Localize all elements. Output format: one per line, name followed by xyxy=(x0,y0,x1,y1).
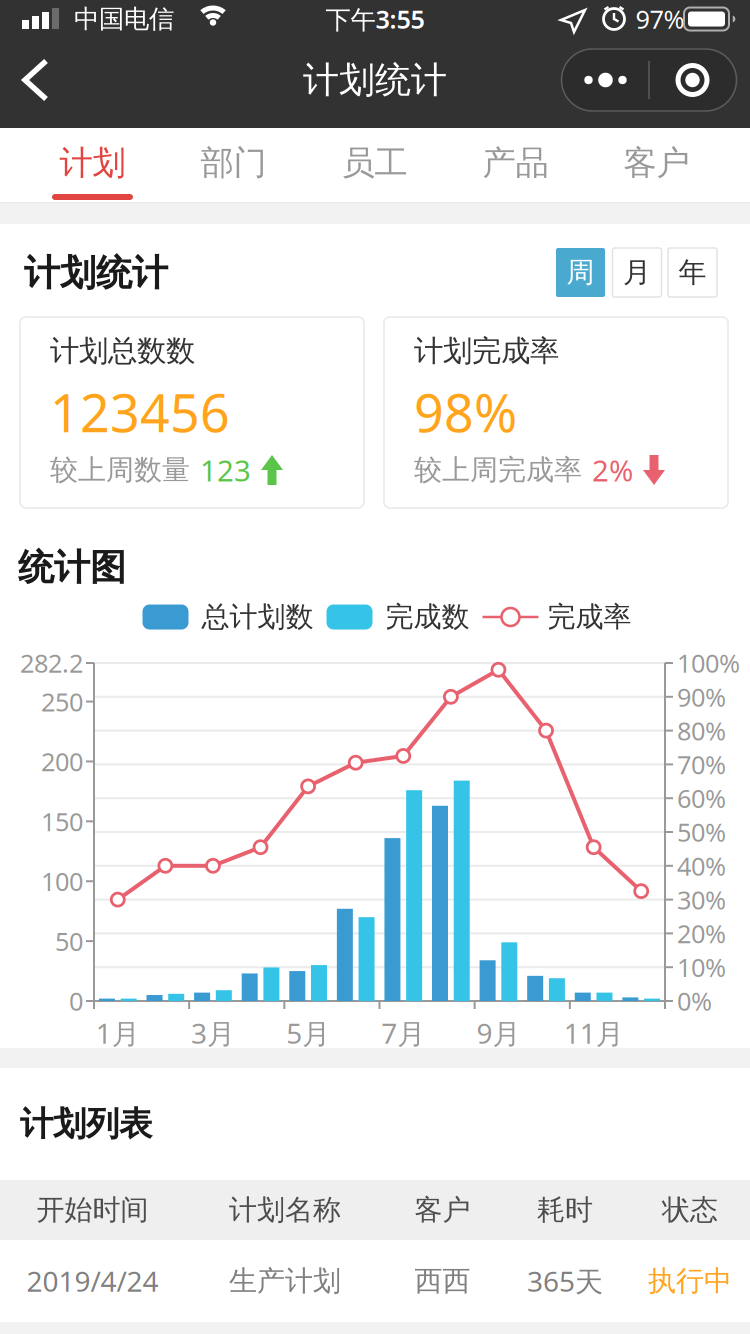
staticText: 月 xyxy=(623,255,651,290)
staticText: 计划完成率 xyxy=(414,333,559,369)
button[interactable]: 周 xyxy=(556,248,605,297)
button[interactable]: 客户 xyxy=(586,128,727,202)
staticText: 周 xyxy=(566,255,594,290)
staticText: 40% xyxy=(677,849,726,883)
staticText: 产品 xyxy=(482,142,548,183)
button[interactable]: 月 xyxy=(612,248,661,297)
staticText: 60% xyxy=(677,781,726,815)
button[interactable]: 计划 xyxy=(22,128,163,202)
staticText: 客户 xyxy=(414,1193,470,1227)
staticText: 统计图 xyxy=(18,545,126,590)
staticText: 计划统计 xyxy=(24,251,168,295)
staticText: 7月 xyxy=(381,1014,425,1052)
staticText: 97% xyxy=(635,2,684,36)
staticText: 250 xyxy=(41,685,83,718)
staticText: 中国电信 xyxy=(74,3,174,34)
staticText: 0 xyxy=(69,984,83,1018)
staticText: 5月 xyxy=(286,1014,330,1052)
staticText: 完成率 xyxy=(547,600,631,634)
staticText: 完成数 xyxy=(385,600,469,634)
staticText: 员工 xyxy=(341,142,407,183)
staticText: 80% xyxy=(677,714,726,747)
staticText: 下午3:55 xyxy=(325,2,424,36)
button[interactable]: 员工 xyxy=(304,128,445,202)
staticText: 较上周数量 xyxy=(50,453,190,487)
staticText: 耗时 xyxy=(537,1193,593,1227)
staticText: 100% xyxy=(677,646,740,680)
staticText: 执行中 xyxy=(648,1264,732,1298)
staticText: 9月 xyxy=(476,1014,520,1052)
button[interactable]: 部门 xyxy=(163,128,304,202)
staticText: 2% xyxy=(592,450,633,489)
staticText: 50% xyxy=(677,815,726,849)
staticText: 年 xyxy=(678,255,706,290)
staticText: 总计划数 xyxy=(201,600,313,634)
staticText: 计划总数数 xyxy=(50,333,195,369)
staticText: 90% xyxy=(677,680,726,714)
staticText: 70% xyxy=(677,748,726,781)
button[interactable]: Back xyxy=(18,58,62,102)
button[interactable]: 产品 xyxy=(445,128,586,202)
staticText: 生产计划 xyxy=(229,1264,341,1298)
staticText: 计划统计 xyxy=(303,58,447,102)
staticText: 50 xyxy=(55,924,83,958)
button[interactable]: Exit mini program xyxy=(670,64,714,96)
staticText: 计划 xyxy=(59,142,125,183)
staticText: 部门 xyxy=(200,142,266,183)
staticText: 开始时间 xyxy=(36,1193,148,1227)
staticText: 10% xyxy=(677,950,726,984)
staticText: 西西 xyxy=(414,1264,470,1298)
staticText: 123 xyxy=(200,450,251,489)
staticText: 100 xyxy=(41,864,83,898)
staticText: 客户 xyxy=(623,142,689,183)
staticText: 98% xyxy=(414,377,517,447)
staticText: 较上周完成率 xyxy=(414,453,582,487)
staticText: 30% xyxy=(677,883,726,916)
staticText: 20% xyxy=(677,917,726,950)
staticText: 0% xyxy=(677,984,712,1018)
staticText: 282.2 xyxy=(20,646,83,680)
staticText: 365天 xyxy=(527,1262,603,1300)
staticText: 1月 xyxy=(96,1014,140,1052)
staticText: 计划列表 xyxy=(20,1103,152,1144)
button[interactable]: 年 xyxy=(668,248,717,297)
staticText: 123456 xyxy=(50,377,230,447)
staticText: 3月 xyxy=(191,1014,235,1052)
staticText: 150 xyxy=(41,804,83,838)
button[interactable]: 2019/4/24 xyxy=(0,1240,750,1322)
staticText: 200 xyxy=(41,745,83,778)
staticText: 计划名称 xyxy=(229,1193,341,1227)
staticText: 状态 xyxy=(662,1193,718,1227)
button[interactable]: More xyxy=(574,64,636,96)
staticText: 11月 xyxy=(564,1014,624,1052)
staticText: 2019/4/24 xyxy=(26,1262,158,1300)
